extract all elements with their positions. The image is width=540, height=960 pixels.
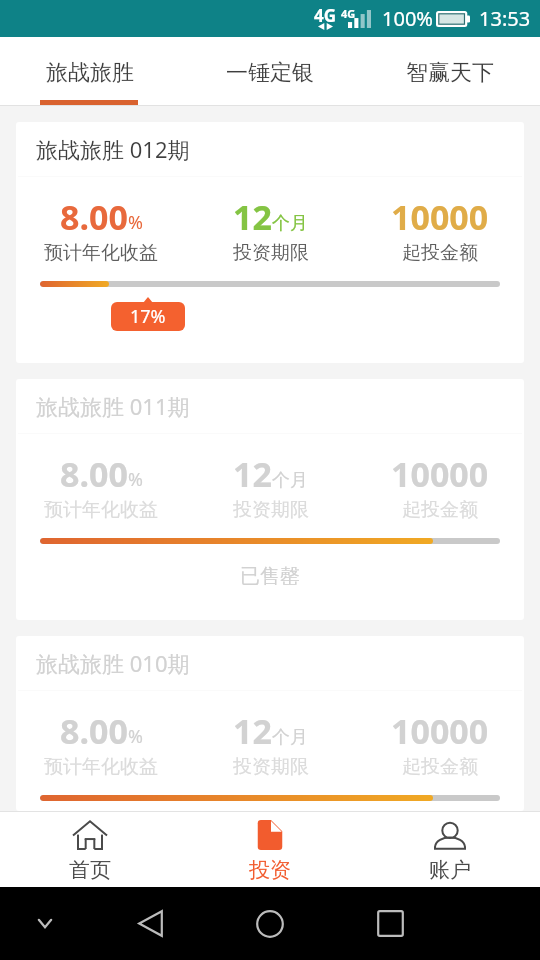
button[interactable]: Investments [180, 811, 360, 887]
staticText: % [128, 210, 143, 235]
staticText: 8.00 [60, 194, 128, 240]
button[interactable]: Recent apps [363, 887, 417, 960]
staticText: 100% [382, 5, 433, 32]
staticText: 10000 [391, 194, 489, 240]
staticText: 账户 [429, 857, 471, 883]
staticText: 8.00 [60, 708, 128, 754]
staticText: 4G [314, 4, 337, 27]
staticText: 12 [233, 451, 272, 497]
staticText: 17% [130, 304, 166, 329]
staticText: 旅战旅胜 010期 [36, 648, 190, 678]
button[interactable]: 旅战旅胜 [0, 37, 180, 106]
staticText: 10000 [391, 451, 489, 497]
button[interactable]: 智赢天下 [360, 37, 540, 106]
button[interactable]: 旅战旅胜 011期 [16, 379, 524, 620]
staticText: 个月 [272, 469, 308, 492]
staticText: % [128, 467, 143, 492]
button[interactable]: Account [360, 811, 540, 887]
button[interactable]: Home [243, 887, 297, 960]
staticText: 投资期限 [233, 755, 309, 779]
staticText: 投资期限 [233, 241, 309, 265]
staticText: 10000 [391, 708, 489, 754]
staticText: 智赢天下 [406, 59, 494, 87]
staticText: 个月 [272, 726, 308, 749]
button[interactable]: Back [123, 887, 177, 960]
staticText: 已售罄 [240, 564, 300, 589]
staticText: 8.00 [60, 451, 128, 497]
staticText: 起投金额 [402, 498, 478, 522]
staticText: 4G [341, 6, 356, 21]
staticText: % [128, 724, 143, 749]
button[interactable]: 旅战旅胜 010期 [16, 636, 524, 811]
button[interactable]: Home [0, 811, 180, 887]
staticText: 12 [233, 708, 272, 754]
staticText: 一锤定银 [226, 59, 314, 87]
staticText: 预计年化收益 [44, 755, 158, 779]
staticText: 旅战旅胜 011期 [36, 391, 190, 421]
button[interactable]: Hide keyboard [18, 887, 72, 960]
staticText: 13:53 [479, 5, 531, 32]
staticText: 投资期限 [233, 498, 309, 522]
staticText: 旅战旅胜 [46, 59, 134, 87]
staticText: 12 [233, 194, 272, 240]
staticText: 预计年化收益 [44, 241, 158, 265]
staticText: 个月 [272, 212, 308, 235]
staticText: 首页 [69, 857, 111, 883]
staticText: 投资 [249, 857, 291, 883]
staticText: 起投金额 [402, 755, 478, 779]
staticText: 起投金额 [402, 241, 478, 265]
staticText: 旅战旅胜 012期 [36, 134, 190, 164]
button[interactable]: 旅战旅胜 012期 [16, 122, 524, 363]
button[interactable]: 一锤定银 [180, 37, 360, 106]
staticText: 预计年化收益 [44, 498, 158, 522]
